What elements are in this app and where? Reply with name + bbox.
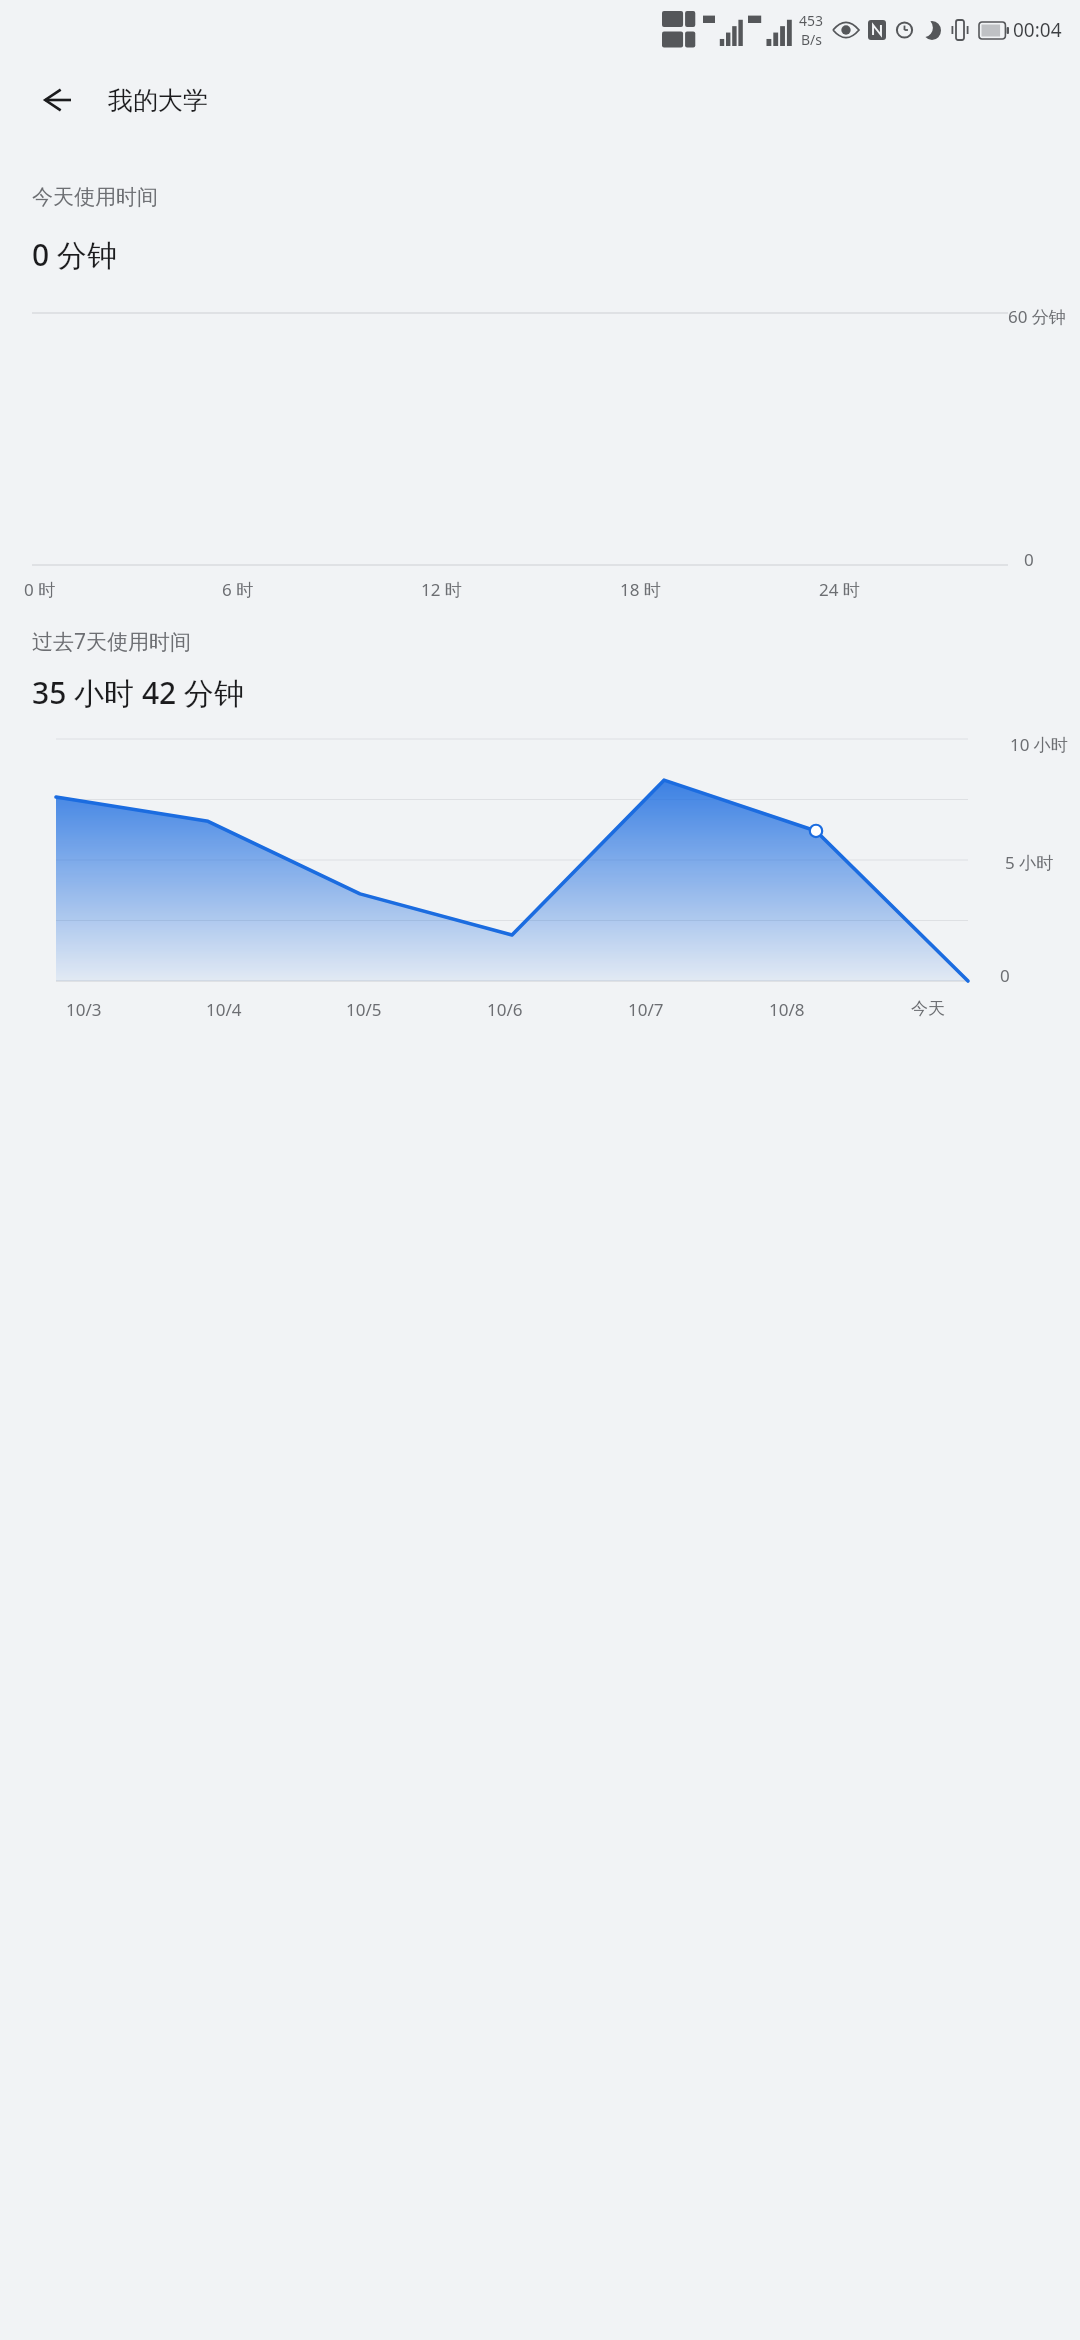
staticText: 0 xyxy=(1000,964,1010,987)
staticText: 10/8 xyxy=(769,998,805,1021)
staticText: 10/7 xyxy=(628,998,664,1021)
staticText: 10/4 xyxy=(206,998,242,1021)
staticText: 12 时 xyxy=(421,578,462,601)
staticText: 今天 xyxy=(911,998,945,1019)
staticText: 今天使用时间 xyxy=(32,184,158,210)
staticText: B/s xyxy=(801,30,823,49)
staticText: 5 小时 xyxy=(1005,851,1054,874)
staticText: 24 时 xyxy=(819,578,860,601)
staticText: 6 时 xyxy=(222,578,254,601)
staticText: 10/5 xyxy=(346,998,382,1021)
staticText: 60 分钟 xyxy=(1008,305,1066,328)
staticText: 18 时 xyxy=(620,578,661,601)
staticText: 0 xyxy=(1024,548,1034,571)
staticText: 10 小时 xyxy=(1010,733,1068,756)
staticText: 0 分钟 xyxy=(32,234,117,275)
staticText: 453 xyxy=(799,11,824,30)
staticText: 00:04 xyxy=(1013,17,1062,43)
staticText: 10/6 xyxy=(487,998,523,1021)
staticText: 过去7天使用时间 xyxy=(32,627,192,656)
staticText: 10/3 xyxy=(66,998,102,1021)
staticText: 35 小时 42 分钟 xyxy=(32,672,245,713)
button[interactable]: Back xyxy=(28,72,84,128)
staticText: 0 时 xyxy=(24,578,56,601)
staticText: 我的大学 xyxy=(108,85,208,116)
